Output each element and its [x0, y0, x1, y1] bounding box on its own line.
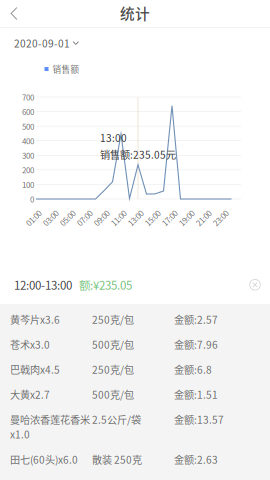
staticText: 金额:7.96: [174, 337, 218, 352]
button[interactable]: 曼哈浓香莲花香米x1.0: [0, 404, 270, 444]
staticText: 苍术x3.0: [10, 337, 50, 352]
staticText: 19:00: [177, 212, 195, 224]
staticText: 金额:1.51: [174, 387, 218, 402]
staticText: 03:00: [41, 212, 59, 224]
staticText: 21:00: [194, 212, 212, 224]
staticText: 大黄x2.7: [10, 387, 50, 402]
button[interactable]: 黄芩片x3.6: [0, 304, 270, 329]
staticText: 统计: [120, 2, 150, 24]
staticText: 300: [22, 149, 34, 161]
staticText: 600: [22, 106, 34, 117]
staticText: 250克/包: [92, 362, 134, 377]
staticText: 17:00: [160, 212, 178, 224]
staticText: 12:00-13:00: [14, 276, 72, 293]
button[interactable]: Back: [0, 0, 28, 27]
staticText: 黄芩片x3.6: [10, 312, 60, 327]
staticText: 500克/包: [92, 387, 134, 402]
button[interactable]: 2020-09-01: [0, 32, 120, 54]
staticText: 500: [22, 120, 34, 132]
staticText: 15:00: [143, 212, 161, 224]
staticText: 金额:2.57: [174, 312, 218, 327]
staticText: 2020-09-01: [14, 36, 70, 50]
button[interactable]: 巴戟肉x4.5: [0, 354, 270, 379]
staticText: 23:00: [211, 212, 229, 224]
staticText: 额:¥235.05: [79, 276, 132, 293]
staticText: 田七(60头)x6.0: [10, 452, 78, 467]
staticText: 销售额:235.05元: [100, 147, 176, 162]
button[interactable]: Close: [243, 273, 267, 297]
staticText: 100: [22, 179, 34, 190]
button[interactable]: 苍术x3.0: [0, 329, 270, 354]
button[interactable]: 大黄x2.7: [0, 379, 270, 404]
staticText: 400: [22, 135, 34, 146]
staticText: 金额:2.63: [174, 452, 218, 467]
staticText: 巴戟肉x4.5: [10, 362, 60, 377]
staticText: 金额:13.57: [174, 412, 224, 427]
staticText: 01:00: [24, 212, 42, 224]
staticText: 200: [22, 164, 34, 176]
staticText: 销售额: [52, 63, 79, 75]
staticText: 0: [30, 193, 34, 205]
staticText: 05:00: [58, 212, 76, 224]
staticText: 07:00: [75, 212, 93, 224]
staticText: 13:00: [126, 212, 144, 224]
staticText: 金额:6.8: [174, 362, 212, 377]
staticText: 11:00: [109, 212, 127, 224]
staticText: 2.5公斤/袋: [92, 412, 141, 427]
staticText: 13:00: [100, 130, 127, 145]
staticText: 500克/包: [92, 337, 134, 352]
button[interactable]: 田七(60头)x6.0: [0, 444, 270, 469]
staticText: 700: [22, 91, 34, 103]
staticText: 09:00: [92, 212, 110, 224]
staticText: 曼哈浓香莲花香米x1.0: [10, 412, 90, 441]
staticText: 250克/包: [92, 312, 134, 327]
staticText: 散装 250克: [92, 452, 142, 467]
